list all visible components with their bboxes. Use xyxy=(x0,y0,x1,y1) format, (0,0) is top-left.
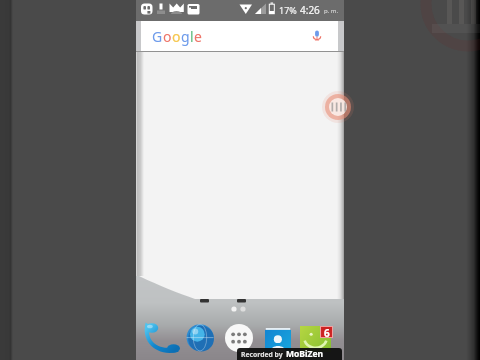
staticText: o xyxy=(163,27,172,46)
button[interactable]: Contacts xyxy=(265,328,291,352)
button[interactable]: Voice search xyxy=(309,28,325,44)
staticText: g xyxy=(181,27,190,46)
button[interactable]: G xyxy=(141,21,338,51)
staticText: p. m. xyxy=(324,7,339,15)
staticText: o xyxy=(172,27,181,46)
button[interactable]: All apps xyxy=(225,324,253,352)
staticText: G xyxy=(152,27,163,46)
staticText: 17% xyxy=(279,4,297,16)
staticText: l xyxy=(190,27,194,46)
staticText: MoBiZen xyxy=(286,348,324,360)
staticText: e xyxy=(194,27,202,46)
button[interactable]: Phone xyxy=(146,322,180,352)
button[interactable]: Browser xyxy=(184,320,216,352)
button[interactable]: Play Store xyxy=(300,326,331,352)
staticText: Recorded by xyxy=(241,350,283,359)
staticText: 6 xyxy=(324,326,330,338)
staticText: 4:26 xyxy=(300,3,320,17)
